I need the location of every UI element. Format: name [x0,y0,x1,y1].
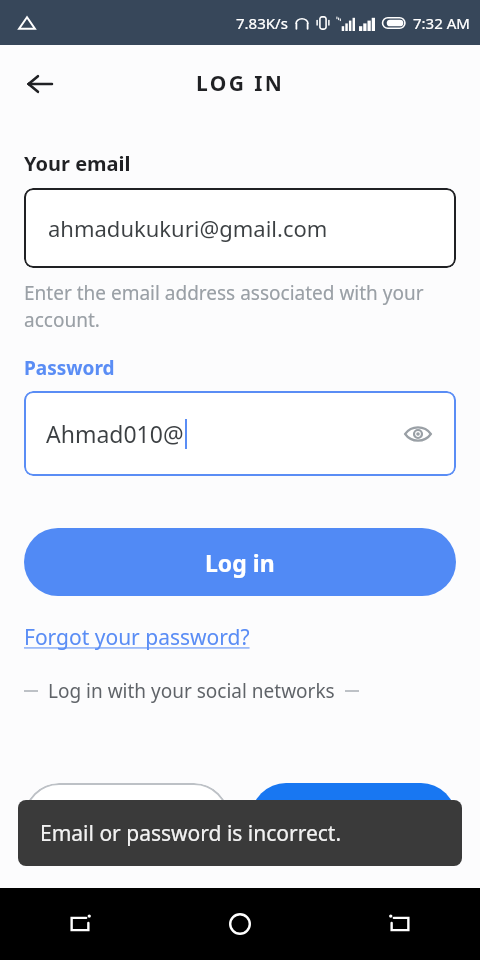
staticText: Log in with your social networks [48,678,335,704]
staticText: ahmadukukuri@gmail.com [48,213,328,243]
button[interactable]: Log in [24,528,456,596]
staticText: 7.83K/s [236,13,288,33]
button[interactable]: Forgot your password? [24,623,250,652]
staticText: Password [24,355,115,381]
button[interactable]: Back [14,58,66,110]
staticText: Ahmad010@ [46,418,184,449]
button[interactable]: Show password [398,414,438,454]
staticText: Enter the email address associated with … [24,280,456,333]
staticText: Your email [24,150,131,177]
button[interactable]: Home [160,888,320,960]
button[interactable]: Log in with Google [24,783,229,853]
button[interactable]: Log in with Facebook [251,783,456,853]
button[interactable]: Back [320,888,480,960]
staticText: Log in [205,547,275,578]
staticText: LOG IN [196,69,285,98]
button[interactable]: Recents [0,888,160,960]
button[interactable]: Ahmad010@ [24,391,456,476]
staticText: Email or password is incorrect. [40,819,342,848]
button[interactable]: ahmadukukuri@gmail.com [24,188,456,268]
staticText: Forgot your password? [24,623,250,652]
staticText: 7:32 AM [413,13,470,33]
